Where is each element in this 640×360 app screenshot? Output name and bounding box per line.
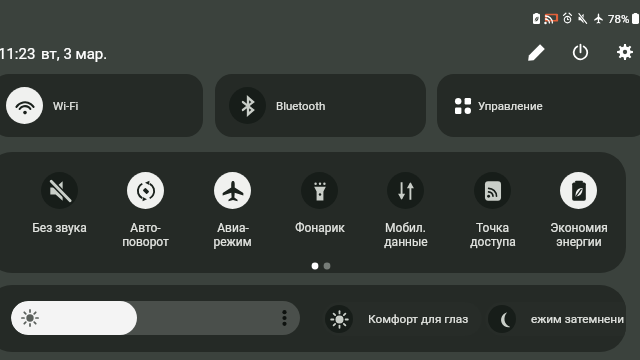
button[interactable]: ежим затемнени — [485, 302, 626, 336]
staticText: 78% — [608, 12, 630, 24]
staticText: вт, 3 мар. — [41, 45, 108, 63]
button[interactable]: Edit — [516, 32, 556, 72]
staticText: поворот — [122, 235, 169, 249]
staticText: Фонарик — [295, 221, 345, 235]
button[interactable]: Brightness — [11, 301, 300, 335]
button[interactable]: Фонарик — [276, 172, 363, 235]
staticText: Без звука — [32, 221, 87, 235]
staticText: Комфорт для глаз — [368, 312, 469, 326]
staticText: Авто- — [130, 221, 161, 235]
staticText: энергии — [556, 235, 602, 249]
button[interactable]: Авто- — [102, 172, 189, 249]
button[interactable]: Wi-Fi — [0, 74, 203, 137]
staticText: Bluetooth — [276, 99, 326, 112]
button[interactable]: Управление — [437, 74, 640, 137]
button[interactable]: Мобил. — [362, 172, 449, 249]
staticText: данные — [384, 235, 428, 249]
staticText: Экономия — [550, 221, 608, 235]
button[interactable]: Settings — [605, 32, 640, 72]
staticText: Управление — [478, 99, 543, 112]
button[interactable]: Power — [560, 32, 600, 72]
button[interactable]: Комфорт для глаз — [322, 302, 482, 336]
button[interactable]: Авиа- — [189, 172, 276, 249]
staticText: Мобил. — [385, 221, 426, 235]
staticText: ежим затемнени — [531, 312, 624, 326]
staticText: Авиа- — [217, 221, 249, 235]
staticText: 11:23 — [0, 45, 36, 63]
staticText: Точка — [476, 221, 509, 235]
button[interactable]: Bluetooth — [215, 74, 426, 137]
button[interactable]: Точка — [449, 172, 536, 249]
staticText: доступа — [470, 235, 516, 249]
button[interactable]: Экономия — [535, 172, 622, 249]
staticText: режим — [213, 235, 252, 249]
staticText: Wi-Fi — [53, 99, 79, 112]
button[interactable]: Без звука — [16, 172, 103, 235]
